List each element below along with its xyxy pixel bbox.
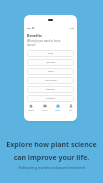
staticText: Sleep <box>48 52 54 55</box>
button[interactable]: Learn <box>38 103 51 121</box>
button[interactable]: Heart health <box>27 77 74 84</box>
staticText: Benefits <box>27 33 42 38</box>
button[interactable]: Immunity <box>27 59 74 66</box>
staticText: Heart health <box>45 79 57 82</box>
button[interactable]: Sleep <box>27 50 74 57</box>
staticText: Cognition <box>46 97 56 100</box>
staticText: What do you want to learn about? <box>27 39 61 47</box>
button[interactable]: Me <box>64 103 77 121</box>
button[interactable]: Home <box>24 103 38 121</box>
staticText: Explore how plant science can improve yo… <box>6 140 97 162</box>
staticText: Learn <box>42 109 48 112</box>
staticText: Stress <box>48 70 54 73</box>
staticText: Digestion <box>46 88 55 91</box>
staticText: Home <box>28 109 34 112</box>
staticText: Following evidence-based research <box>18 165 86 171</box>
staticText: Immunity <box>46 61 56 64</box>
button[interactable]: Shop <box>51 103 64 121</box>
staticText: Me <box>69 109 73 112</box>
button[interactable]: Stress <box>27 68 74 75</box>
button[interactable]: Digestion <box>27 86 74 93</box>
button[interactable]: Cognition <box>27 95 74 102</box>
staticText: Shop <box>55 109 60 112</box>
